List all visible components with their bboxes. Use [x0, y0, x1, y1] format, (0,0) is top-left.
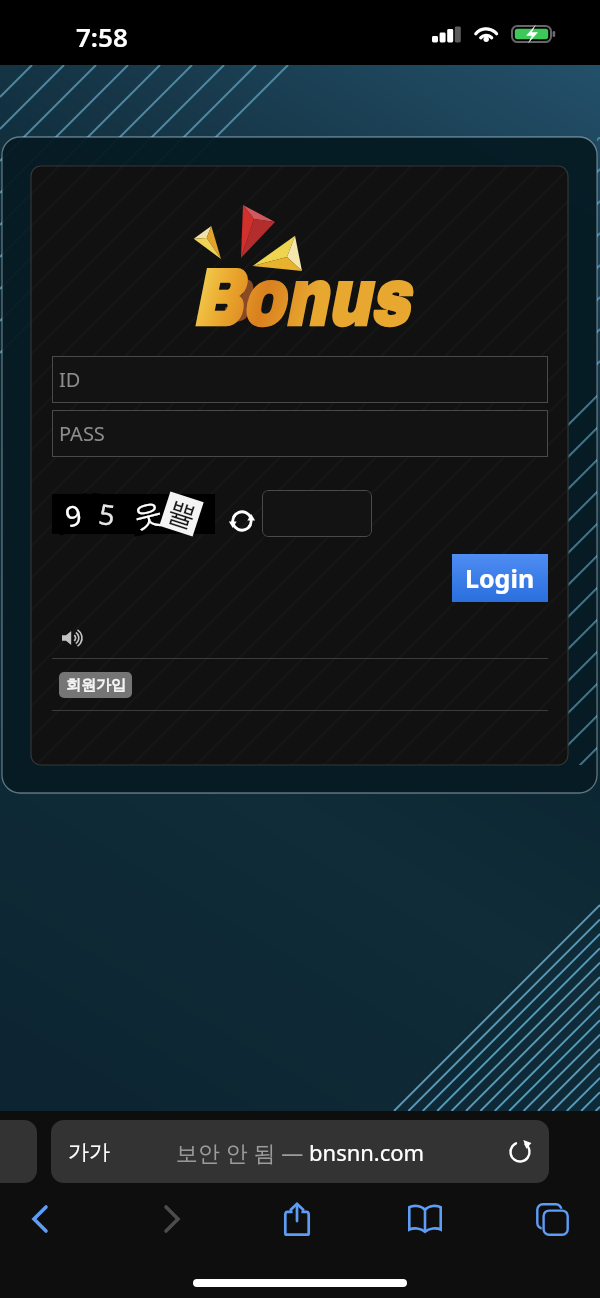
- button[interactable]: Play sound: [62, 631, 82, 645]
- staticText: 웃: [130, 495, 166, 536]
- button[interactable]: [262, 490, 372, 537]
- button[interactable]: Tabs: [524, 1196, 580, 1242]
- button[interactable]: Reload: [506, 1138, 534, 1166]
- button[interactable]: Share: [269, 1196, 325, 1242]
- staticText: ID: [59, 366, 81, 393]
- staticText: 3: [222, 269, 250, 332]
- staticText: 보안 안 됨 —: [176, 1137, 309, 1167]
- staticText: 가가: [68, 1139, 110, 1165]
- button[interactable]: 9: [52, 494, 215, 534]
- staticText: 7:58: [76, 19, 128, 54]
- button[interactable]: PASS: [52, 410, 548, 457]
- staticText: Bonus: [192, 254, 556, 342]
- button[interactable]: ID: [52, 356, 548, 403]
- button[interactable]: 회원가입: [59, 672, 132, 698]
- staticText: Login: [465, 561, 535, 595]
- staticText: PASS: [59, 420, 105, 447]
- button[interactable]: Back: [12, 1196, 68, 1242]
- staticText: 9: [61, 495, 85, 533]
- button[interactable]: Login: [452, 554, 548, 602]
- button[interactable]: Forward: [144, 1196, 200, 1242]
- staticText: bnsnn.com: [309, 1137, 425, 1167]
- button[interactable]: Bookmarks: [397, 1196, 453, 1242]
- button[interactable]: 가가: [51, 1120, 549, 1183]
- staticText: 회원가입: [66, 676, 126, 695]
- staticText: 5: [97, 494, 118, 532]
- button[interactable]: [0, 1120, 37, 1183]
- button[interactable]: Refresh captcha: [228, 507, 256, 535]
- staticText: 쁄: [163, 494, 200, 536]
